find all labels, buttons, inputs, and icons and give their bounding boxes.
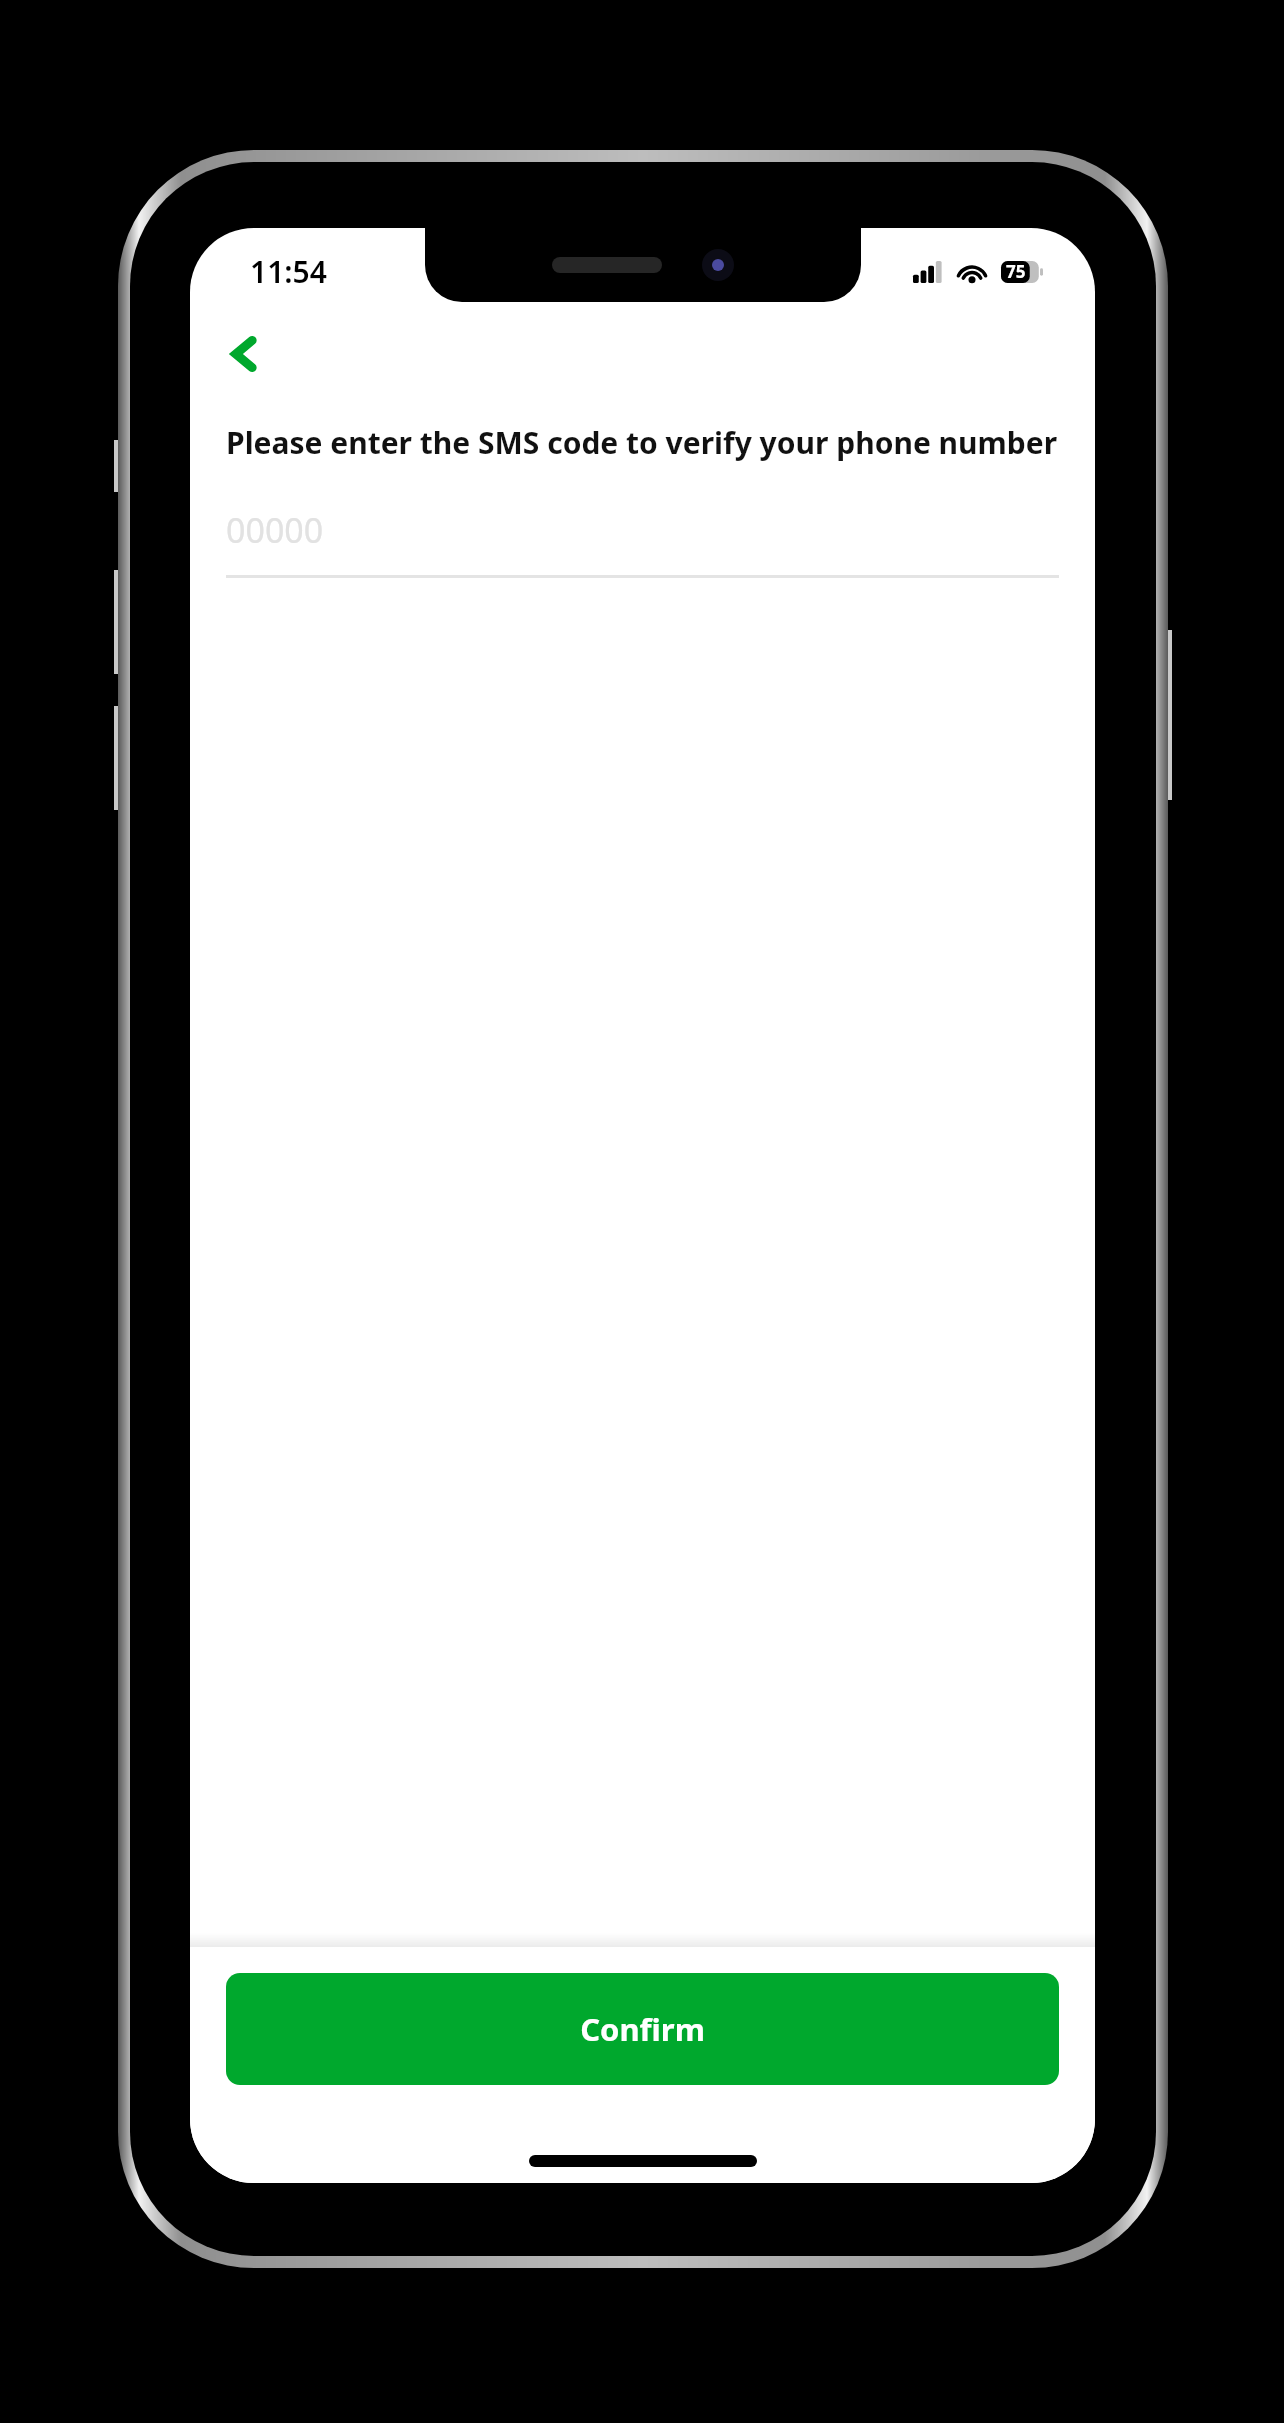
staticText: Confirm [580, 2008, 705, 2050]
button[interactable]: 00000 [226, 507, 1059, 578]
staticText: 11:54 [250, 251, 327, 292]
staticText: 75 [1006, 260, 1026, 283]
button[interactable]: Back [212, 322, 276, 386]
staticText: 00000 [226, 507, 324, 553]
button[interactable]: Confirm [226, 1973, 1059, 2085]
staticText: Please enter the SMS code to verify your… [226, 422, 1059, 463]
